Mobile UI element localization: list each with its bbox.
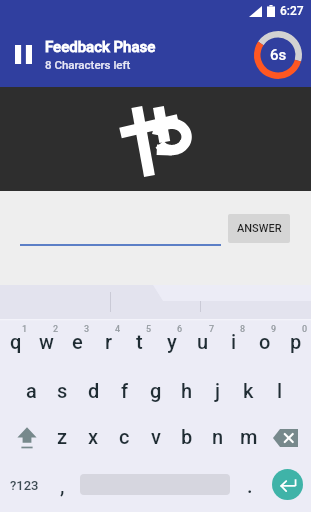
staticText: h xyxy=(181,379,193,402)
button[interactable]: f xyxy=(109,371,140,409)
button[interactable]: w xyxy=(31,322,62,360)
staticText: f xyxy=(121,379,129,402)
button[interactable]: v xyxy=(140,417,171,455)
staticText: e xyxy=(72,330,83,353)
staticText: t xyxy=(136,330,143,353)
staticText: b xyxy=(181,425,193,448)
staticText: , xyxy=(60,474,65,497)
staticText: 9 xyxy=(271,324,277,334)
button[interactable]: g xyxy=(140,371,171,409)
button[interactable]: a xyxy=(16,371,47,409)
staticText: s xyxy=(57,379,68,402)
staticText: ANSWER xyxy=(237,222,282,235)
button[interactable]: d xyxy=(78,371,109,409)
button[interactable]: c xyxy=(109,417,140,455)
staticText: y xyxy=(167,330,177,353)
staticText: 7 xyxy=(209,324,215,334)
button[interactable]: p xyxy=(280,322,311,360)
button[interactable]: e xyxy=(62,322,93,360)
button[interactable]: Shift xyxy=(7,419,46,457)
staticText: z xyxy=(57,425,68,448)
staticText: m xyxy=(240,425,258,448)
staticText: 8 xyxy=(240,324,246,334)
button[interactable]: o xyxy=(249,322,280,360)
button[interactable]: , xyxy=(48,466,76,504)
button[interactable]: z xyxy=(47,417,78,455)
staticText: x xyxy=(88,425,99,448)
staticText: k xyxy=(243,379,254,402)
staticText: 1 xyxy=(22,324,28,334)
staticText: Feedback Phase xyxy=(45,38,156,56)
button[interactable]: y xyxy=(156,322,187,360)
staticText: p xyxy=(290,330,302,353)
button[interactable]: i xyxy=(218,322,249,360)
staticText: l xyxy=(277,379,283,402)
button[interactable]: j xyxy=(202,371,233,409)
button[interactable]: r xyxy=(93,322,124,360)
staticText: g xyxy=(150,379,162,402)
button[interactable]: b xyxy=(171,417,202,455)
staticText: n xyxy=(212,425,224,448)
button[interactable]: m xyxy=(233,417,264,455)
staticText: v xyxy=(151,425,161,448)
staticText: u xyxy=(197,330,209,353)
staticText: a xyxy=(26,379,37,402)
button[interactable]: u xyxy=(187,322,218,360)
staticText: o xyxy=(259,330,271,353)
staticText: 6s xyxy=(270,46,287,64)
button[interactable]: . xyxy=(236,466,264,504)
button[interactable]: ?123 xyxy=(4,466,44,504)
staticText: 0 xyxy=(302,324,308,334)
button[interactable]: k xyxy=(233,371,264,409)
staticText: j xyxy=(215,379,221,402)
button[interactable]: n xyxy=(202,417,233,455)
staticText: 6:27 xyxy=(280,4,304,18)
staticText: 6 xyxy=(177,324,183,334)
staticText: i xyxy=(231,330,237,353)
staticText: 4 xyxy=(115,324,121,334)
button[interactable]: t xyxy=(124,322,155,360)
staticText: 5 xyxy=(146,324,152,334)
staticText: ?123 xyxy=(10,478,39,493)
staticText: r xyxy=(105,330,113,353)
button[interactable]: Pause xyxy=(15,45,32,64)
button[interactable]: x xyxy=(78,417,109,455)
staticText: c xyxy=(119,425,130,448)
staticText: . xyxy=(247,474,253,497)
staticText: w xyxy=(39,330,54,353)
button[interactable]: Enter xyxy=(272,469,303,500)
button[interactable]: Backspace xyxy=(266,419,304,457)
staticText: 8 Characters left xyxy=(45,58,131,71)
button[interactable]: l xyxy=(264,371,295,409)
staticText: 3 xyxy=(84,324,90,334)
button[interactable]: q xyxy=(0,322,31,360)
button[interactable]: h xyxy=(171,371,202,409)
staticText: 2 xyxy=(53,324,59,334)
button[interactable]: s xyxy=(47,371,78,409)
button[interactable]: ANSWER xyxy=(228,214,290,243)
staticText: d xyxy=(88,379,100,402)
staticText: q xyxy=(10,330,22,353)
